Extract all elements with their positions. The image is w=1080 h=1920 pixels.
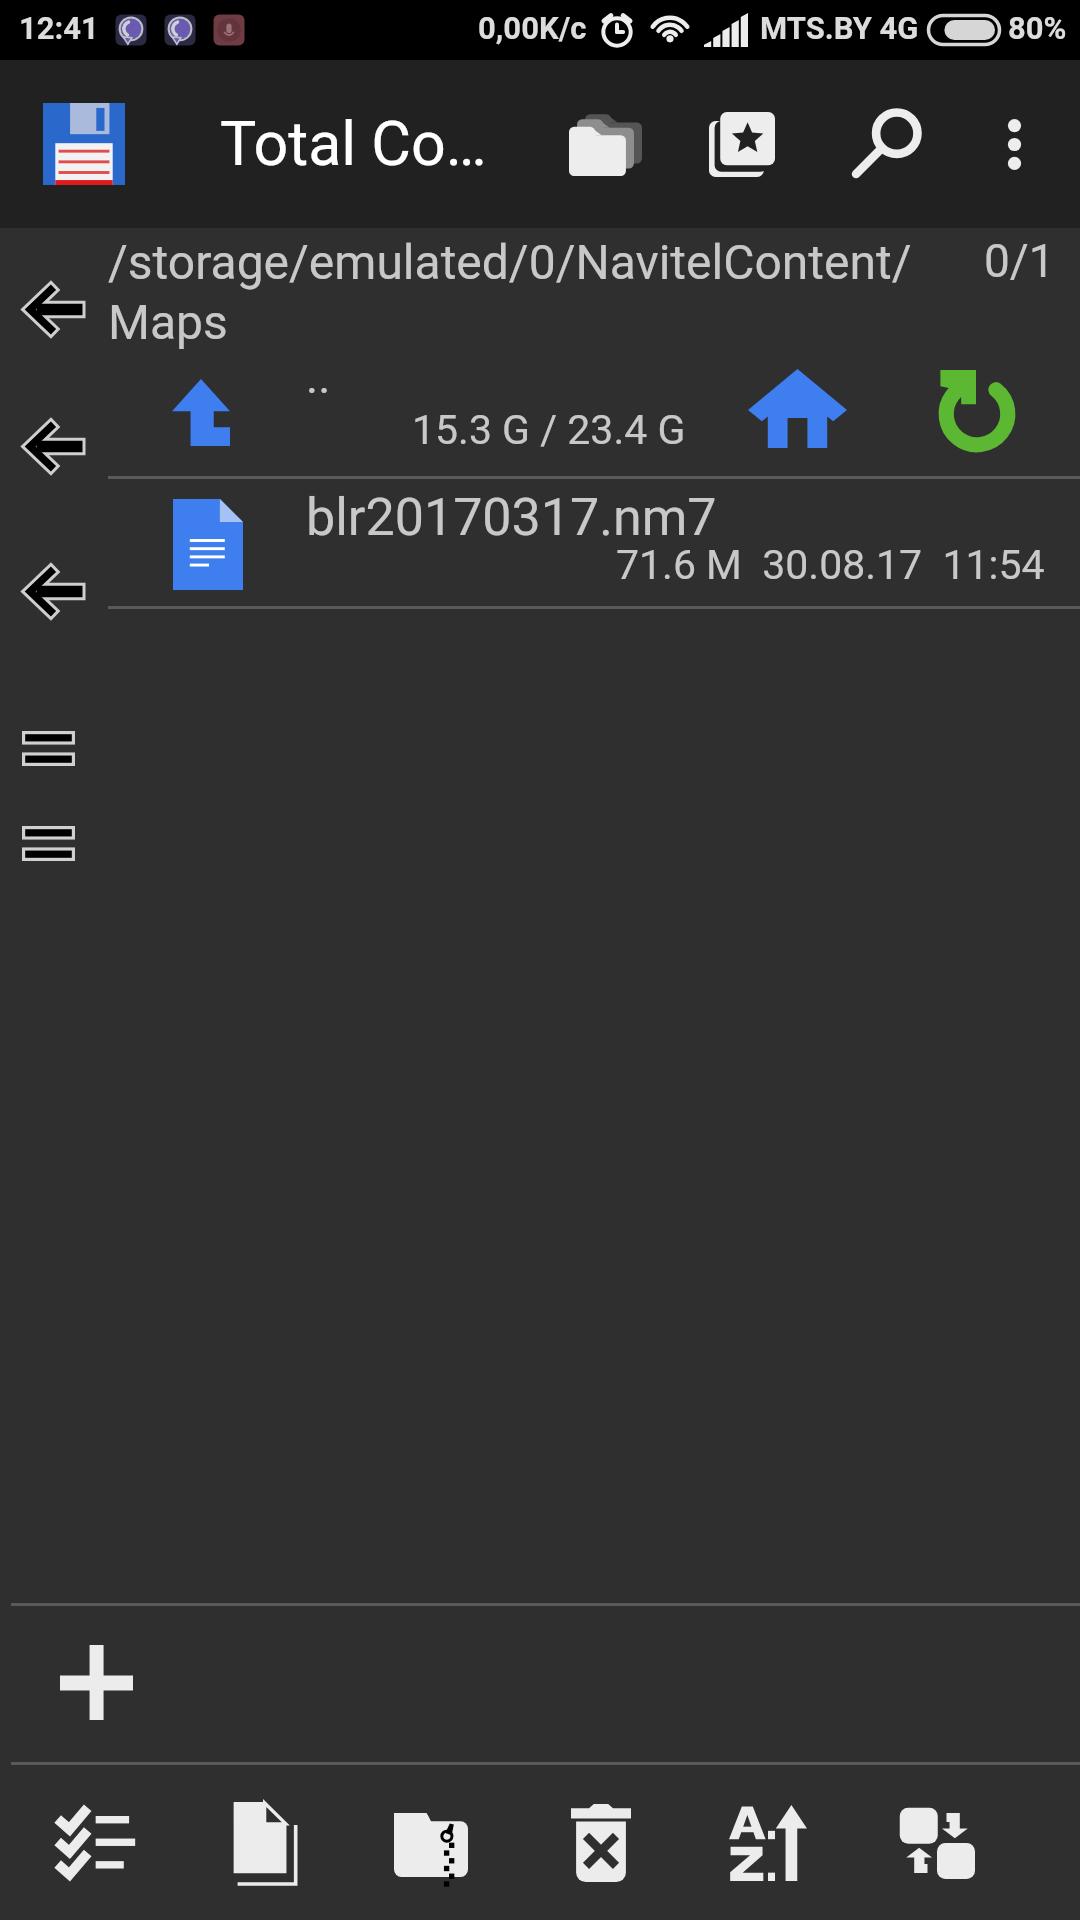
button[interactable]: Back (0, 538, 96, 634)
button[interactable]: Delete (517, 1765, 685, 1920)
staticText: 15.3 G / 23.4 G (412, 406, 686, 454)
staticText: Total Co… (220, 108, 487, 179)
button[interactable]: Search (824, 77, 952, 205)
button[interactable]: Move (853, 1765, 1021, 1920)
button[interactable]: More options (955, 85, 1073, 203)
staticText: /storage/emulated/0/NavitelContent/ Maps (108, 234, 912, 350)
button[interactable]: Bookmarks (678, 80, 806, 208)
staticText: blr20170317.nm7 (306, 487, 717, 548)
button[interactable]: Copy (180, 1765, 348, 1920)
staticText: 0,00K/c (478, 10, 587, 46)
staticText: 80% (1008, 10, 1067, 46)
staticText: MTS.BY 4G (760, 10, 919, 46)
button[interactable]: Back (0, 393, 96, 489)
button[interactable]: Add tab (31, 1617, 161, 1747)
button[interactable]: blr20170317.nm7 (0, 479, 1080, 609)
button[interactable]: Select files (9, 1765, 177, 1920)
button[interactable]: /storage/emulated/0/NavitelContent/ Maps (0, 228, 1080, 348)
staticText: 0/1 (984, 234, 1055, 288)
button[interactable]: Back (0, 256, 96, 352)
button[interactable]: Compress (347, 1765, 515, 1920)
staticText: .. (306, 350, 331, 404)
button[interactable]: Switch panel (0, 793, 96, 889)
button[interactable]: Switch panel (0, 698, 96, 794)
staticText: 71.6 M 30.08.17 11:54 (616, 541, 1045, 589)
staticText: 12:41 (19, 10, 99, 46)
button[interactable]: .. (0, 348, 1080, 479)
button[interactable]: Sort (684, 1765, 852, 1920)
button[interactable]: Folders (537, 80, 665, 208)
button[interactable]: Open drive list (20, 80, 148, 208)
